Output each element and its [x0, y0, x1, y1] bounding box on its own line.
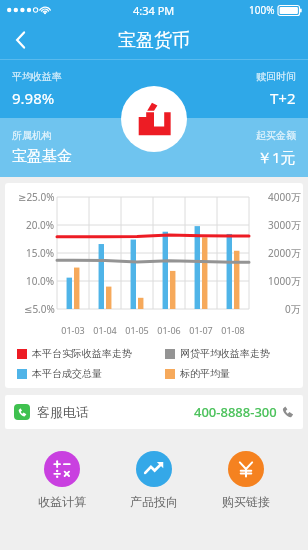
staticText: 01-04: [89, 324, 121, 336]
staticText: ￥1元: [257, 147, 296, 167]
staticText: 01-07: [185, 324, 217, 336]
staticText: 15.0%: [26, 246, 55, 260]
staticText: 01-06: [153, 324, 185, 336]
staticText: 01-08: [217, 324, 249, 336]
staticText: 4000万: [268, 190, 301, 204]
staticText: ≥25.0%: [18, 190, 55, 204]
staticText: 赎回时间: [256, 70, 296, 83]
button[interactable]: 收益计算: [22, 449, 102, 511]
staticText: 购买链接: [222, 494, 270, 509]
staticText: T+2: [270, 88, 296, 108]
staticText: 起买金额: [256, 129, 296, 142]
button[interactable]: 购买链接: [206, 449, 286, 511]
staticText: 100%: [249, 3, 275, 17]
staticText: 1000万: [268, 274, 301, 288]
staticText: 2000万: [268, 246, 301, 260]
staticText: 所属机构: [12, 129, 52, 142]
staticText: 400-8888-300: [194, 403, 277, 421]
staticText: 宝盈货币: [118, 29, 190, 52]
staticText: 0万: [285, 302, 301, 316]
button[interactable]: Back: [0, 20, 42, 60]
staticText: 3000万: [268, 218, 301, 232]
staticText: 客服电话: [37, 404, 89, 420]
staticText: 4:34 PM: [133, 3, 175, 18]
staticText: 9.98%: [12, 88, 55, 108]
staticText: 产品投向: [130, 494, 178, 509]
staticText: 01-05: [121, 324, 153, 336]
staticText: ≤5.0%: [24, 302, 55, 316]
staticText: 20.0%: [26, 218, 55, 232]
staticText: 收益计算: [38, 494, 86, 509]
staticText: 平均收益率: [12, 70, 62, 83]
staticText: 10.0%: [26, 274, 55, 288]
staticText: 本平台成交总量: [32, 367, 102, 380]
button[interactable]: 产品投向: [114, 449, 194, 511]
staticText: 标的平均量: [180, 367, 230, 380]
staticText: 本平台实际收益率走势: [32, 347, 132, 360]
staticText: 网贷平均收益率走势: [180, 347, 270, 360]
button[interactable]: 客服电话: [5, 395, 303, 429]
staticText: 宝盈基金: [12, 147, 72, 166]
staticText: 01-03: [57, 324, 89, 336]
